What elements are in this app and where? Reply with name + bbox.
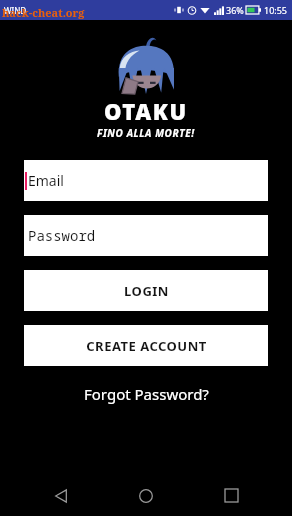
button[interactable]: CREATE ACCOUNT [24,325,268,366]
button[interactable]: Email [24,160,268,201]
button[interactable]: Password [24,215,268,256]
staticText: 36% [226,4,244,16]
staticText: Email [28,171,64,190]
button[interactable]: LOGIN [24,270,268,311]
staticText: hack-cheat.org [2,5,85,20]
staticText: CREATE ACCOUNT [86,337,207,355]
staticText: WIND [4,5,27,16]
staticText: Password [28,226,96,245]
button[interactable]: Forgot Password? [0,380,292,408]
button[interactable]: Back [37,475,85,516]
button[interactable]: Home [122,475,170,516]
staticText: OTAKU [104,96,188,126]
button[interactable]: Recent apps [207,475,255,516]
staticText: 10:55 [264,4,288,16]
staticText: Forgot Password? [84,384,209,404]
staticText: FINO ALLA MORTE! [97,126,195,140]
staticText: LOGIN [124,282,169,300]
